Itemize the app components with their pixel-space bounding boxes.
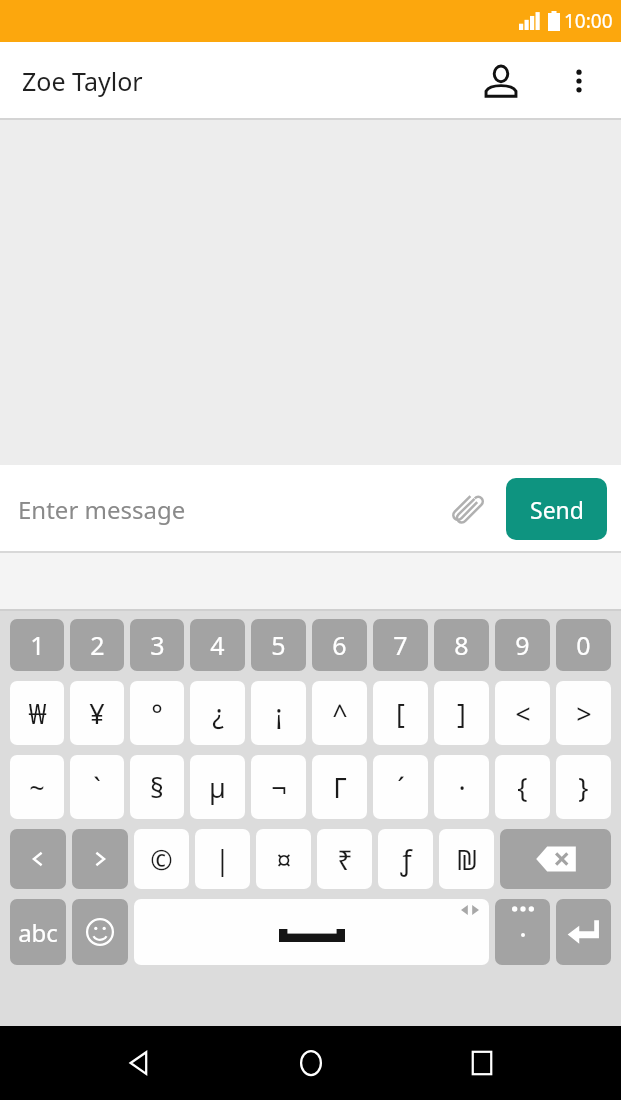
staticText: 7 [393, 628, 408, 662]
button[interactable]: ° [130, 681, 184, 745]
staticText: 1 [30, 628, 45, 662]
button[interactable]: µ [190, 755, 245, 819]
button[interactable] [495, 899, 550, 965]
button[interactable]: next [72, 829, 128, 889]
staticText: § [150, 769, 164, 806]
button[interactable]: [ [373, 681, 428, 745]
staticText: { [517, 769, 528, 806]
staticText: 5 [271, 628, 286, 662]
staticText: ^ [332, 695, 348, 732]
button[interactable]: ` [70, 755, 124, 819]
staticText: ´ [397, 769, 405, 806]
button[interactable]: 5 [251, 619, 306, 671]
button[interactable]: prev [10, 829, 66, 889]
button[interactable]: § [130, 755, 184, 819]
button[interactable]: ^ [312, 681, 367, 745]
button[interactable]: © [134, 829, 189, 889]
button[interactable]: Back [107, 1031, 171, 1095]
staticText: ¥ [89, 695, 105, 732]
button[interactable]: 8 [434, 619, 489, 671]
button[interactable]: Contact [475, 55, 527, 107]
button[interactable]: ¤ [256, 829, 311, 889]
staticText: ƒ [400, 841, 412, 878]
button[interactable]: } [556, 755, 611, 819]
button[interactable]: ~ [10, 755, 64, 819]
staticText: 8 [454, 628, 469, 662]
button[interactable]: emoji [72, 899, 128, 965]
staticText: · [458, 769, 466, 806]
button[interactable]: 0 [556, 619, 611, 671]
staticText: 10:00 [564, 8, 613, 34]
button[interactable]: abc [10, 899, 66, 965]
staticText: ¡ [275, 695, 283, 732]
button[interactable]: · [434, 755, 489, 819]
button[interactable]: ƒ [378, 829, 433, 889]
staticText: Γ [333, 769, 347, 806]
button[interactable]: Home [279, 1031, 343, 1095]
staticText: ¿ [212, 695, 224, 732]
button[interactable]: 2 [70, 619, 124, 671]
button[interactable]: 4 [190, 619, 245, 671]
staticText: ~ [29, 769, 45, 806]
button[interactable]: ¡ [251, 681, 306, 745]
staticText: Send [530, 494, 584, 525]
staticText: µ [209, 769, 226, 806]
button[interactable]: 3 [130, 619, 184, 671]
staticText: abc [18, 916, 58, 949]
button[interactable]: ₩ [10, 681, 64, 745]
button[interactable]: 7 [373, 619, 428, 671]
button[interactable]: Attach [441, 483, 493, 535]
button[interactable]: Send [506, 478, 607, 540]
staticText: 6 [332, 628, 347, 662]
staticText: 4 [210, 628, 225, 662]
button[interactable]: backspace [500, 829, 611, 889]
staticText: 3 [150, 628, 165, 662]
button[interactable]: ] [434, 681, 489, 745]
staticText: ] [457, 695, 466, 732]
staticText: Enter message [18, 493, 186, 526]
button[interactable]: 9 [495, 619, 550, 671]
staticText: ° [151, 695, 163, 732]
staticText: | [215, 841, 230, 878]
button[interactable]: { [495, 755, 550, 819]
button[interactable]: More options [555, 57, 603, 105]
staticText: Zoe Taylor [22, 64, 143, 98]
button[interactable]: 6 [312, 619, 367, 671]
button[interactable]: space [134, 899, 489, 965]
staticText: 0 [576, 628, 591, 662]
staticText: ` [93, 769, 101, 806]
button[interactable]: ₹ [317, 829, 372, 889]
staticText: > [576, 695, 592, 732]
staticText: ₩ [28, 695, 47, 732]
button[interactable]: < [495, 681, 550, 745]
staticText: < [515, 695, 531, 732]
button[interactable]: ¥ [70, 681, 124, 745]
staticText: ¬ [271, 769, 287, 806]
staticText: ₹ [337, 841, 353, 878]
staticText: } [578, 769, 589, 806]
button[interactable]: enter [556, 899, 611, 965]
staticText: ¤ [276, 841, 292, 878]
staticText: ₪ [456, 841, 478, 878]
staticText: [ [396, 695, 405, 732]
staticText: 2 [90, 628, 105, 662]
staticText: 9 [515, 628, 530, 662]
button[interactable]: | [195, 829, 250, 889]
staticText: © [150, 841, 173, 878]
button[interactable]: Recents [450, 1031, 514, 1095]
button[interactable]: ¿ [190, 681, 245, 745]
button[interactable]: ´ [373, 755, 428, 819]
button[interactable]: ₪ [439, 829, 494, 889]
button[interactable]: Γ [312, 755, 367, 819]
button[interactable]: ¬ [251, 755, 306, 819]
button[interactable]: > [556, 681, 611, 745]
button[interactable]: 1 [10, 619, 64, 671]
